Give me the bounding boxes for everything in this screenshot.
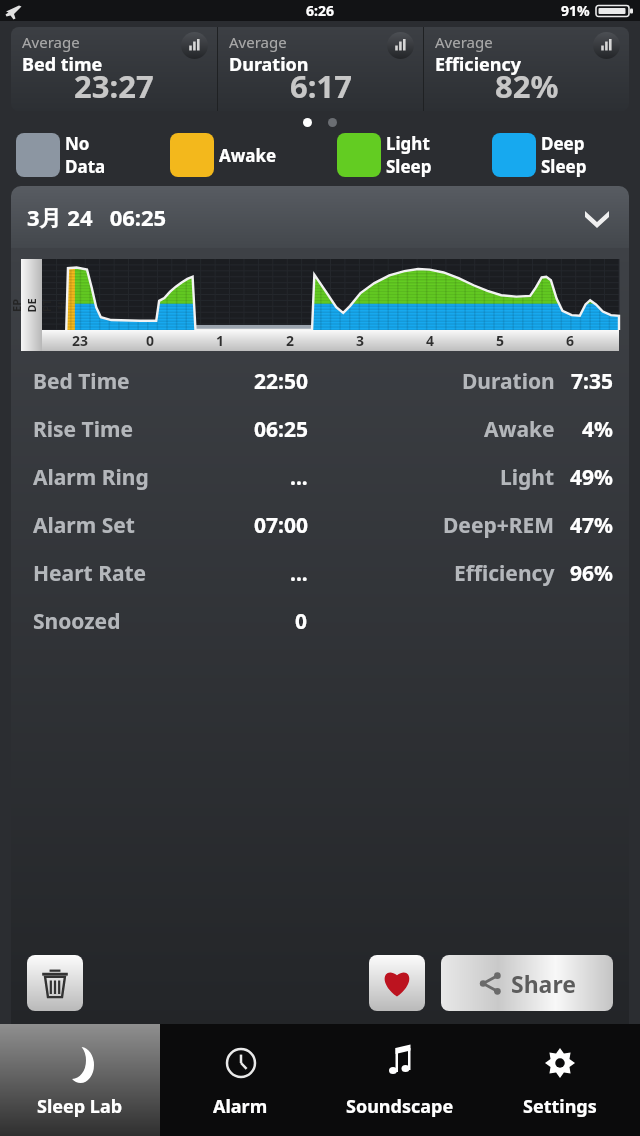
staticText: 6:17 (290, 65, 352, 107)
staticText: Sleep Lab (37, 1094, 123, 1119)
other: Expand (583, 203, 611, 231)
staticText: Average (22, 32, 80, 52)
staticText: Snoozed (33, 607, 121, 636)
staticText: Sleep (386, 155, 432, 178)
staticText: Bed Time (33, 367, 130, 396)
button[interactable]: Average (11, 27, 217, 111)
button[interactable]: Average (218, 27, 423, 111)
staticText: Light (386, 132, 430, 155)
button[interactable]: Soundscape (320, 1024, 480, 1136)
staticText: Light (500, 463, 555, 492)
staticText: Heart Rate (33, 559, 147, 588)
staticText: Sleep (541, 155, 587, 178)
staticText: 06:25 (254, 415, 308, 444)
staticText: 4% (582, 415, 613, 444)
staticText: 96% (570, 559, 613, 588)
staticText: 23:27 (74, 65, 154, 107)
staticText: Duration (229, 52, 309, 77)
button[interactable]: Statistics (593, 32, 620, 59)
button[interactable]: Alarm (160, 1024, 320, 1136)
staticText: Alarm (213, 1094, 268, 1119)
staticText: 6:26 (306, 1, 334, 20)
staticText: Awake (219, 144, 277, 167)
staticText: Average (435, 32, 493, 52)
staticText: Average (229, 32, 287, 52)
staticText: No (65, 132, 90, 155)
staticText: 22:50 (254, 367, 308, 396)
staticText: 5 (496, 331, 505, 350)
staticText: 6 (566, 331, 575, 350)
button[interactable]: Statistics (387, 32, 414, 59)
staticText: Settings (523, 1094, 597, 1119)
staticText: ... (290, 559, 308, 588)
staticText: 4 (426, 331, 435, 350)
staticText: Alarm Ring (33, 463, 149, 492)
staticText: SLEEP DEPTH (11, 295, 69, 316)
staticText: Deep+REM (443, 511, 555, 540)
staticText: 3月 24 06:25 (27, 202, 167, 232)
staticText: 49% (570, 463, 613, 492)
staticText: Rise Time (33, 415, 134, 444)
staticText: Share (511, 968, 576, 999)
button[interactable]: Share (441, 955, 613, 1011)
staticText: 1 (216, 331, 225, 350)
staticText: 3 (356, 331, 365, 350)
staticText: 0 (146, 331, 155, 350)
staticText: 7:35 (571, 367, 613, 396)
staticText: 07:00 (254, 511, 308, 540)
staticText: Duration (462, 367, 555, 396)
button[interactable]: 3月 24 06:25 (11, 186, 629, 248)
button[interactable]: Statistics (181, 32, 208, 59)
staticText: 82% (495, 65, 559, 107)
button[interactable]: Delete (27, 955, 83, 1011)
staticText: Deep (541, 132, 585, 155)
staticText: 47% (570, 511, 613, 540)
staticText: 0 (295, 607, 308, 636)
staticText: Efficiency (454, 559, 555, 588)
staticText: 23 (72, 331, 89, 350)
button[interactable]: Favorite (369, 955, 425, 1011)
button[interactable]: Settings (480, 1024, 640, 1136)
staticText: 91% (561, 1, 590, 20)
staticText: 2 (286, 331, 295, 350)
staticText: Awake (484, 415, 555, 444)
staticText: Bed time (22, 52, 103, 77)
button[interactable]: Average (424, 27, 629, 111)
button[interactable]: Sleep Lab (0, 1024, 160, 1136)
staticText: Soundscape (346, 1094, 454, 1119)
staticText: ... (290, 463, 308, 492)
staticText: Efficiency (435, 52, 522, 77)
staticText: Data (65, 155, 106, 178)
staticText: Alarm Set (33, 511, 135, 540)
